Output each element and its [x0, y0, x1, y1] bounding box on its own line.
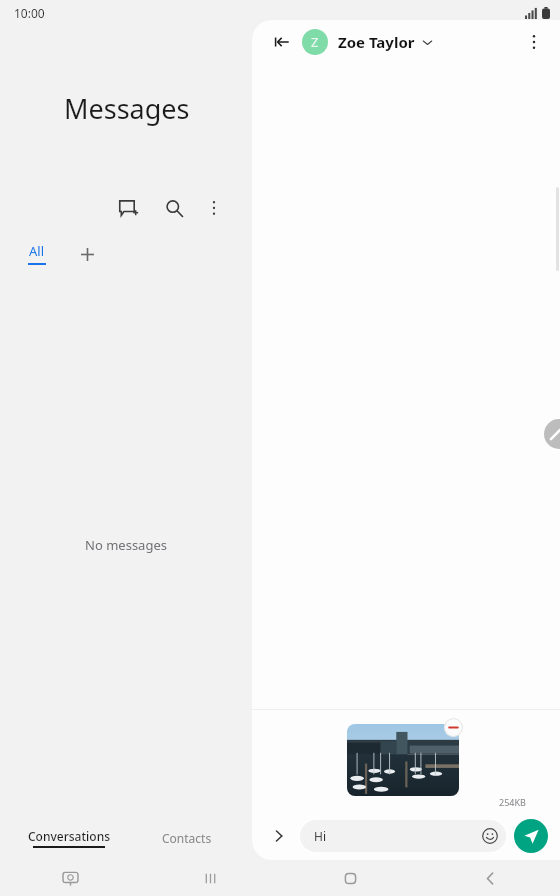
button[interactable]	[347, 724, 459, 796]
button[interactable]: Expand actions	[264, 821, 294, 851]
button[interactable]: All	[22, 240, 52, 267]
button[interactable]: More options	[520, 28, 548, 56]
staticText: Conversations	[28, 828, 110, 844]
staticText: No messages	[85, 536, 167, 554]
button[interactable]: New conversation	[112, 192, 144, 224]
staticText: Zoe Taylor	[338, 32, 415, 52]
button[interactable]: More options	[200, 194, 228, 222]
button[interactable]: Screenshot	[0, 860, 140, 896]
staticText: Contacts	[162, 830, 212, 846]
staticText: All	[29, 242, 45, 260]
button[interactable]: Contacts	[152, 826, 222, 850]
button[interactable]: Search	[158, 192, 190, 224]
button[interactable]: Conversations	[18, 824, 120, 852]
button[interactable]: Hi	[300, 820, 506, 852]
button[interactable]: Edit	[544, 419, 560, 449]
button[interactable]: Home	[280, 860, 420, 896]
button[interactable]: Add category	[74, 241, 100, 267]
button[interactable]: Back	[420, 860, 560, 896]
staticText: Messages	[64, 90, 190, 127]
staticText: Z	[311, 33, 319, 51]
button[interactable]: Recents	[140, 860, 280, 896]
staticText: 254KB	[499, 796, 526, 808]
button[interactable]: Z	[302, 29, 520, 55]
button[interactable]: Send	[514, 819, 548, 853]
staticText: Hi	[314, 828, 482, 844]
staticText: 10:00	[14, 5, 45, 21]
button[interactable]: Remove attachment	[444, 718, 463, 737]
button[interactable]: Back	[268, 28, 296, 56]
